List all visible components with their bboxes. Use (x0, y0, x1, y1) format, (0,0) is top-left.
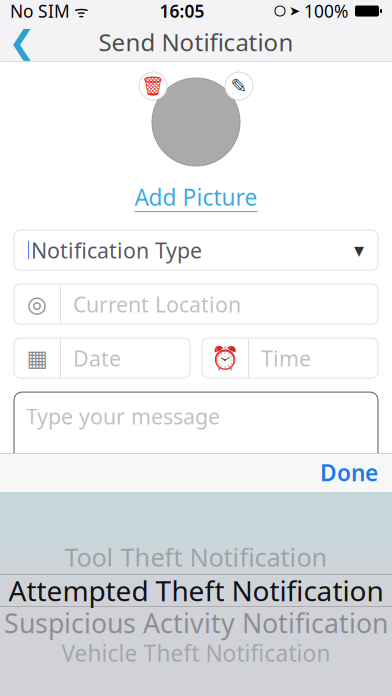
staticText: ᯤ (70, 0, 89, 22)
staticText: Tool Theft Notification (64, 540, 327, 574)
button[interactable]: ▦ (14, 338, 190, 378)
staticText: ▦ (26, 345, 47, 371)
staticText: Vehicle Theft Notification (61, 638, 330, 668)
staticText: ▾ (354, 239, 364, 261)
staticText: Send Notification (98, 26, 293, 58)
button[interactable]: ◎ (14, 284, 378, 324)
button[interactable]: Type your message (14, 392, 378, 470)
button[interactable]: Add Picture (134, 174, 257, 216)
staticText: 16:05 (159, 0, 204, 22)
staticText: ➤ (289, 3, 300, 18)
staticText: Time (261, 344, 311, 372)
staticText: Add Picture (134, 182, 257, 212)
staticText: Current Location (73, 290, 241, 318)
staticText: Type your message (26, 402, 220, 430)
staticText: Notification Type (31, 236, 202, 264)
staticText: Attempted Theft Notification (8, 572, 383, 609)
staticText: ◎ (27, 291, 47, 317)
staticText: Date (73, 344, 121, 372)
staticText: 🗑 (141, 75, 165, 97)
button[interactable]: Notification Type (14, 230, 378, 270)
button[interactable]: Done (306, 448, 392, 496)
button[interactable]: Back (0, 22, 44, 62)
button[interactable]: Edit picture (225, 72, 253, 100)
staticText: 100% (304, 0, 348, 22)
button[interactable]: Delete picture (139, 72, 167, 100)
staticText: ❮ (8, 24, 35, 60)
staticText: No SIM (10, 0, 70, 22)
staticText: ✎ (230, 75, 247, 97)
staticText: Suspicious Activity Notification (4, 605, 388, 641)
staticText: ⏰ (211, 345, 239, 371)
staticText: Done (320, 457, 378, 487)
button[interactable]: ⏰ (202, 338, 378, 378)
